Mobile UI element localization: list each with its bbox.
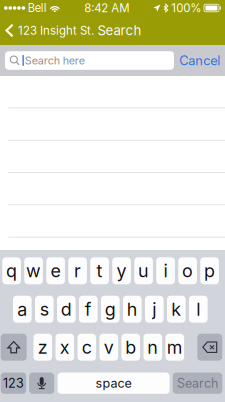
button[interactable]: o — [178, 257, 197, 284]
staticText: s — [40, 298, 49, 320]
staticText: 8:42 AM — [84, 1, 129, 15]
button[interactable]: f — [79, 296, 98, 323]
staticText: a — [17, 298, 27, 320]
button[interactable]: i — [156, 257, 175, 284]
staticText: f — [85, 298, 92, 320]
staticText: Search here — [25, 54, 85, 67]
staticText: Bell — [28, 1, 47, 15]
button[interactable]: p — [200, 257, 219, 284]
button[interactable]: space — [58, 372, 170, 394]
staticText: i — [164, 260, 168, 282]
button[interactable]: d — [57, 296, 76, 323]
button[interactable]: Delete — [197, 334, 222, 361]
button[interactable]: u — [134, 257, 153, 284]
staticText: d — [61, 298, 72, 320]
staticText: k — [171, 298, 181, 320]
staticText: space — [96, 376, 132, 391]
button[interactable]: a — [13, 296, 32, 323]
button[interactable]: k — [167, 296, 186, 323]
button[interactable]: r — [68, 257, 87, 284]
button[interactable]: Shift — [1, 334, 27, 361]
button[interactable]: w — [24, 257, 43, 284]
staticText: u — [138, 260, 149, 282]
button[interactable]: Dictate — [29, 372, 54, 394]
staticText: q — [6, 260, 17, 282]
staticText: m — [167, 336, 183, 358]
button[interactable]: Search here — [5, 51, 174, 70]
staticText: 123 Insight St. — [18, 24, 94, 37]
staticText: g — [105, 298, 116, 320]
button[interactable]: x — [55, 334, 74, 361]
staticText: t — [97, 260, 103, 282]
button[interactable]: Cancel — [175, 47, 224, 73]
button[interactable]: h — [123, 296, 142, 323]
button[interactable]: 123 Insight St. — [0, 16, 95, 45]
button[interactable]: e — [46, 257, 65, 284]
staticText: r — [74, 260, 81, 282]
button[interactable]: j — [145, 296, 164, 323]
staticText: 123 — [3, 376, 24, 391]
button[interactable]: Search — [95, 16, 144, 45]
staticText: Search — [97, 22, 141, 38]
button[interactable]: n — [143, 334, 162, 361]
staticText: e — [51, 260, 61, 282]
button[interactable]: b — [121, 334, 140, 361]
button[interactable]: m — [165, 334, 184, 361]
staticText: b — [125, 336, 136, 358]
staticText: x — [60, 336, 70, 358]
button[interactable]: g — [101, 296, 120, 323]
staticText: z — [38, 336, 48, 358]
staticText: Search — [177, 376, 218, 391]
staticText: n — [147, 336, 158, 358]
staticText: j — [152, 298, 156, 320]
staticText: y — [117, 260, 127, 282]
button[interactable]: q — [2, 257, 21, 284]
staticText: w — [26, 260, 41, 282]
button[interactable]: v — [99, 334, 118, 361]
staticText: o — [182, 260, 193, 282]
button[interactable]: z — [33, 334, 52, 361]
button[interactable]: l — [189, 296, 208, 323]
button[interactable]: t — [90, 257, 109, 284]
button[interactable]: s — [35, 296, 54, 323]
staticText: p — [204, 260, 215, 282]
staticText: Cancel — [179, 53, 220, 68]
button[interactable]: c — [77, 334, 96, 361]
staticText: v — [104, 336, 114, 358]
staticText: l — [196, 298, 200, 320]
staticText: 100% — [171, 1, 201, 15]
staticText: h — [127, 298, 138, 320]
button[interactable]: 123 — [1, 372, 26, 394]
button[interactable]: Search — [173, 372, 222, 394]
button[interactable]: y — [112, 257, 131, 284]
staticText: c — [82, 336, 92, 358]
